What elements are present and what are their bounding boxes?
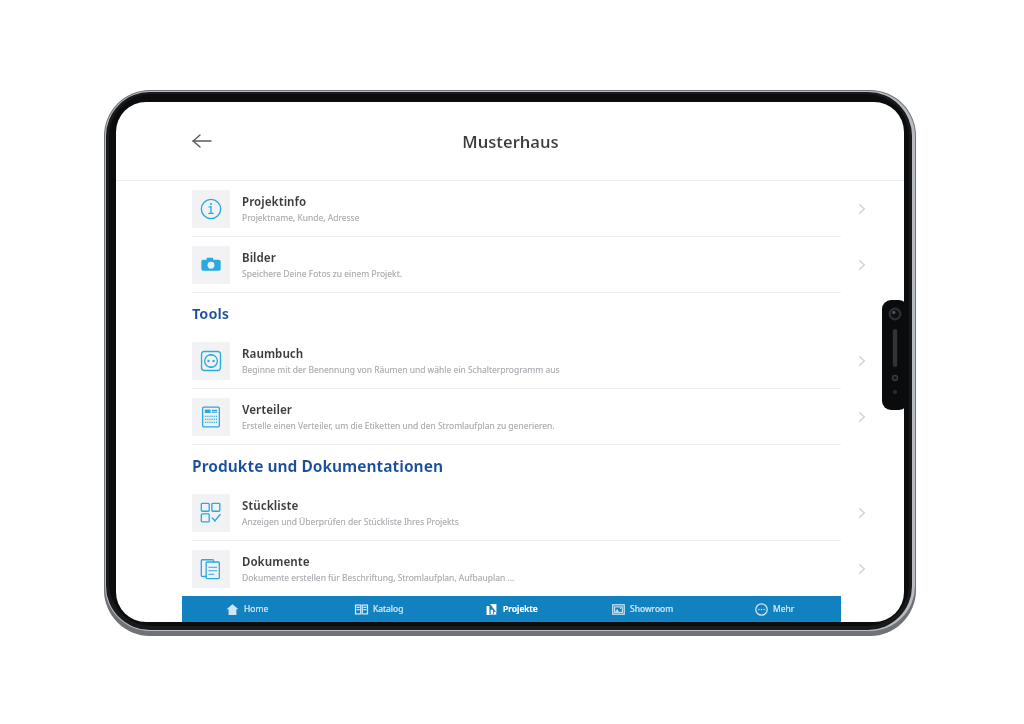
button[interactable]: Verteiler <box>116 389 904 444</box>
button[interactable]: Projekte <box>445 596 577 622</box>
staticText: Tools <box>192 303 230 323</box>
staticText: Dokumente erstellen für Beschriftung, St… <box>242 572 515 584</box>
button[interactable]: Projektinfo <box>116 181 904 236</box>
staticText: Verteiler <box>242 402 292 418</box>
staticText: Stückliste <box>242 498 299 514</box>
button[interactable]: Showroom <box>577 596 709 622</box>
staticText: Bilder <box>242 250 276 266</box>
button[interactable]: Raumbuch <box>116 333 904 388</box>
button[interactable]: Back <box>184 123 220 159</box>
staticText: Produkte und Dokumentationen <box>192 455 444 476</box>
button[interactable]: Home <box>182 596 313 622</box>
button[interactable]: Katalog <box>313 596 445 622</box>
staticText: Projektinfo <box>242 194 307 210</box>
button[interactable]: Mehr <box>709 596 841 622</box>
staticText: Katalog <box>373 603 404 615</box>
button[interactable]: Stückliste <box>116 485 904 540</box>
staticText: Projektname, Kunde, Adresse <box>242 212 360 224</box>
staticText: Dokumente <box>242 554 310 570</box>
staticText: Anzeigen und Überprüfen der Stückliste I… <box>242 516 459 528</box>
staticText: Speichere Deine Fotos zu einem Projekt. <box>242 268 402 280</box>
staticText: Projekte <box>503 603 538 615</box>
staticText: Musterhaus <box>462 130 559 152</box>
staticText: Showroom <box>630 603 674 615</box>
staticText: Erstelle einen Verteiler, um die Etikett… <box>242 420 555 432</box>
staticText: Home <box>244 603 269 615</box>
staticText: Mehr <box>773 603 795 615</box>
button[interactable]: Dokumente <box>116 541 904 596</box>
button[interactable]: Bilder <box>116 237 904 292</box>
staticText: Beginne mit der Benennung von Räumen und… <box>242 364 560 376</box>
staticText: Raumbuch <box>242 346 304 362</box>
